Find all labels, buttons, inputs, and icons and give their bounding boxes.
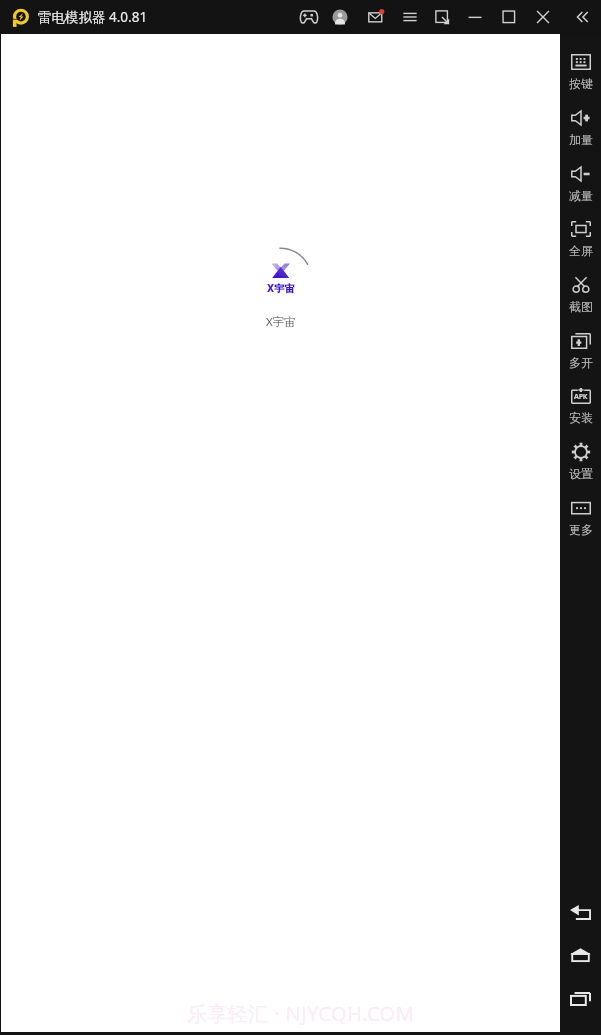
- staticText: 截图: [569, 299, 593, 314]
- button[interactable]: Home: [560, 943, 601, 967]
- staticText: 全屏: [569, 243, 593, 258]
- button[interactable]: 按键: [560, 48, 601, 103]
- button[interactable]: Resize: [426, 0, 458, 34]
- staticText: APK: [574, 392, 588, 402]
- button[interactable]: Recents: [560, 987, 601, 1011]
- button[interactable]: 全屏: [560, 215, 601, 270]
- button[interactable]: 截图: [560, 271, 601, 326]
- button[interactable]: 设置: [560, 438, 601, 493]
- button[interactable]: Back: [560, 900, 601, 924]
- staticText: 乐享轻汇 · NJYCQH.COM: [187, 1000, 415, 1027]
- staticText: 更多: [569, 522, 593, 537]
- staticText: 安装: [569, 410, 593, 425]
- staticText: X宇宙: [267, 282, 295, 295]
- button[interactable]: 减量: [560, 160, 601, 215]
- button[interactable]: Gamepad: [293, 0, 325, 34]
- button[interactable]: Close: [527, 0, 559, 34]
- staticText: 多开: [569, 355, 593, 370]
- button[interactable]: Minimize: [459, 0, 491, 34]
- button[interactable]: Messages: [360, 0, 392, 34]
- button[interactable]: Account: [324, 0, 356, 34]
- button[interactable]: 多开: [560, 327, 601, 382]
- button[interactable]: 加量: [560, 104, 601, 159]
- staticText: 设置: [569, 466, 593, 481]
- button[interactable]: Menu: [394, 0, 426, 34]
- button[interactable]: Maximize: [493, 0, 525, 34]
- staticText: X宇宙: [266, 314, 296, 330]
- button[interactable]: APK: [560, 382, 601, 437]
- button[interactable]: 更多: [560, 494, 601, 549]
- button[interactable]: Collapse sidebar: [566, 0, 598, 34]
- staticText: 减量: [569, 188, 593, 203]
- staticText: 按键: [569, 76, 593, 91]
- staticText: 雷电模拟器 4.0.81: [38, 8, 148, 26]
- staticText: 加量: [569, 132, 593, 147]
